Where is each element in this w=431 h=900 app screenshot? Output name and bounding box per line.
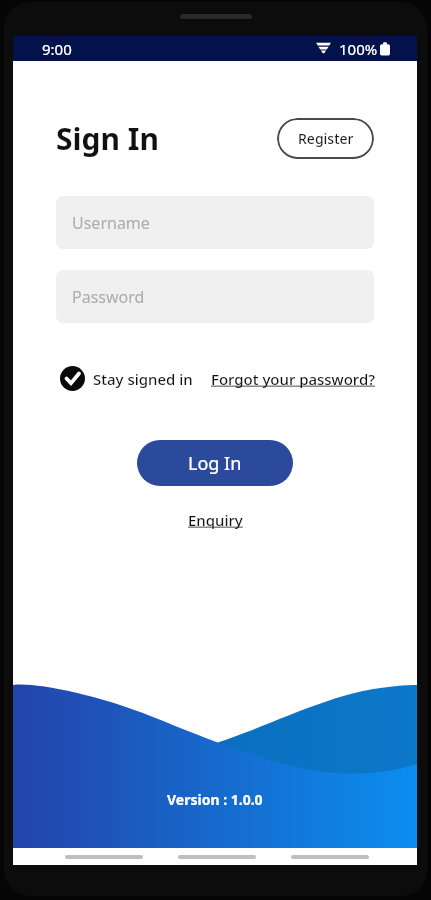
staticText: Forgot your password?: [211, 369, 375, 389]
staticText: Log In: [188, 451, 242, 476]
staticText: 100%: [339, 39, 378, 59]
staticText: Register: [298, 129, 354, 148]
button[interactable]: Navigation: [178, 855, 256, 859]
staticText: 9:00: [42, 39, 72, 59]
button[interactable]: Navigation: [291, 855, 369, 859]
staticText: Stay signed in: [93, 369, 193, 389]
staticText: Version : 1.0.0: [167, 790, 263, 809]
button[interactable]: Log In: [137, 440, 293, 486]
button[interactable]: Navigation: [65, 855, 143, 859]
button[interactable]: Forgot your password?: [211, 369, 375, 389]
staticText: Sign In: [56, 118, 159, 159]
button[interactable]: Stay signed in: [60, 366, 193, 391]
staticText: Password: [72, 286, 145, 308]
staticText: Enquiry: [188, 510, 243, 530]
staticText: Username: [72, 212, 150, 234]
button[interactable]: Password: [56, 270, 374, 323]
button[interactable]: Register: [277, 118, 374, 159]
button[interactable]: Enquiry: [188, 510, 243, 530]
button[interactable]: Username: [56, 196, 374, 249]
